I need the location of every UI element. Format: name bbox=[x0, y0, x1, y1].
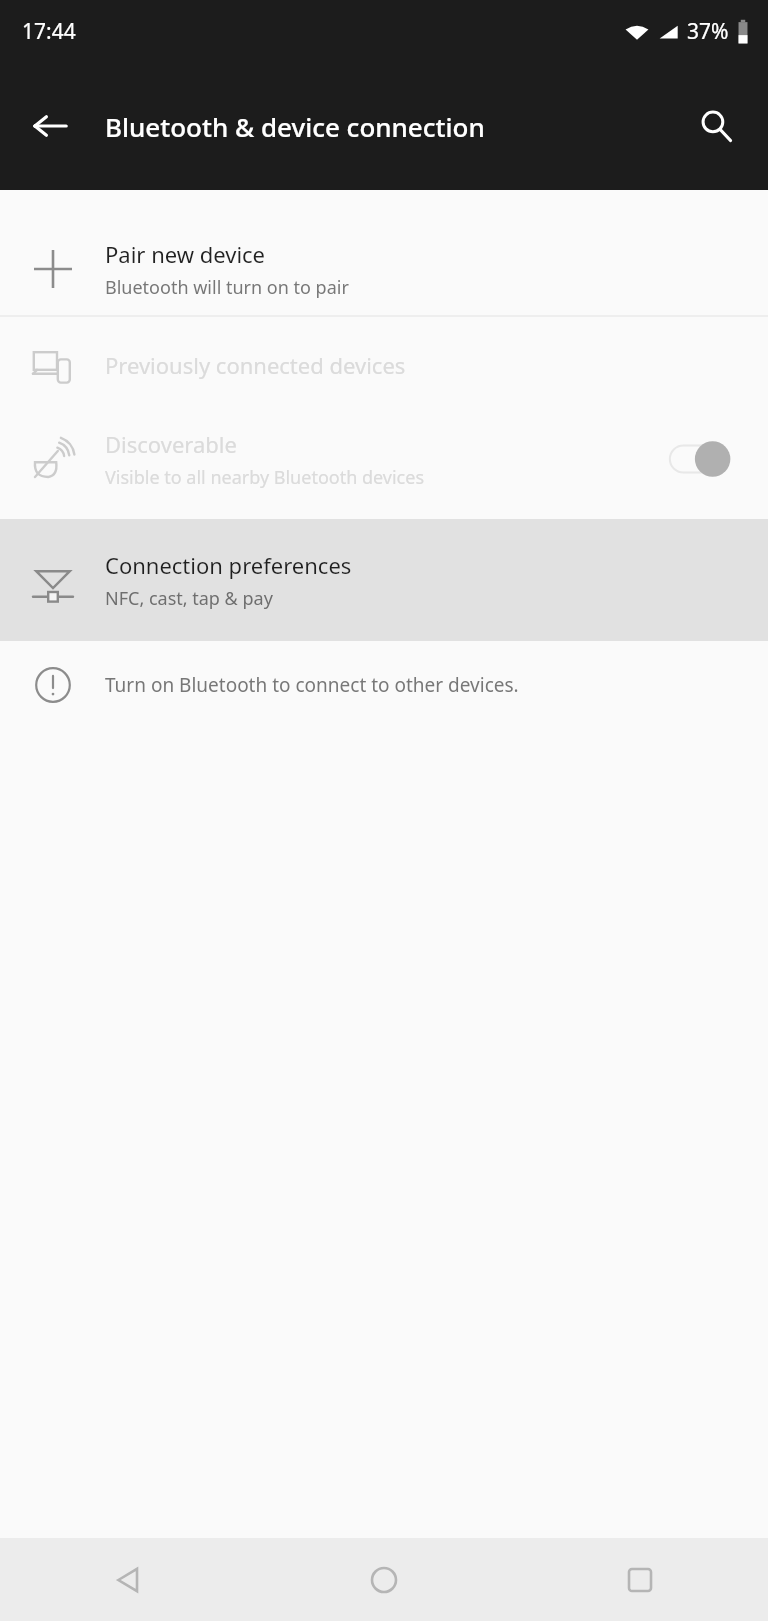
button[interactable]: Recents bbox=[512, 1538, 768, 1621]
staticText: NFC, cast, tap & pay bbox=[105, 586, 273, 611]
staticText: Connection preferences bbox=[105, 550, 352, 580]
staticText: Previously connected devices bbox=[105, 350, 406, 380]
staticText: Turn on Bluetooth to connect to other de… bbox=[105, 672, 519, 698]
staticText: Discoverable bbox=[105, 429, 237, 459]
button[interactable]: Back bbox=[14, 90, 86, 162]
staticText: Pair new device bbox=[105, 239, 266, 269]
staticText: Bluetooth & device connection bbox=[105, 109, 485, 144]
staticText: 37% bbox=[687, 17, 729, 46]
button[interactable]: Turn on Bluetooth to connect to other de… bbox=[0, 641, 768, 729]
button[interactable]: Back bbox=[0, 1538, 256, 1621]
button[interactable]: Pair new device bbox=[0, 223, 768, 315]
staticText: Visible to all nearby Bluetooth devices bbox=[105, 465, 425, 490]
button[interactable]: Previously connected devices bbox=[0, 317, 768, 413]
staticText: 17:44 bbox=[22, 17, 76, 46]
staticText: Bluetooth will turn on to pair bbox=[105, 275, 349, 300]
button[interactable]: Discoverable bbox=[0, 413, 768, 505]
button[interactable]: Connection preferences bbox=[0, 519, 768, 641]
button[interactable]: Home bbox=[256, 1538, 512, 1621]
button[interactable]: Search bbox=[680, 90, 752, 162]
button[interactable]: Discoverable toggle bbox=[666, 435, 740, 483]
